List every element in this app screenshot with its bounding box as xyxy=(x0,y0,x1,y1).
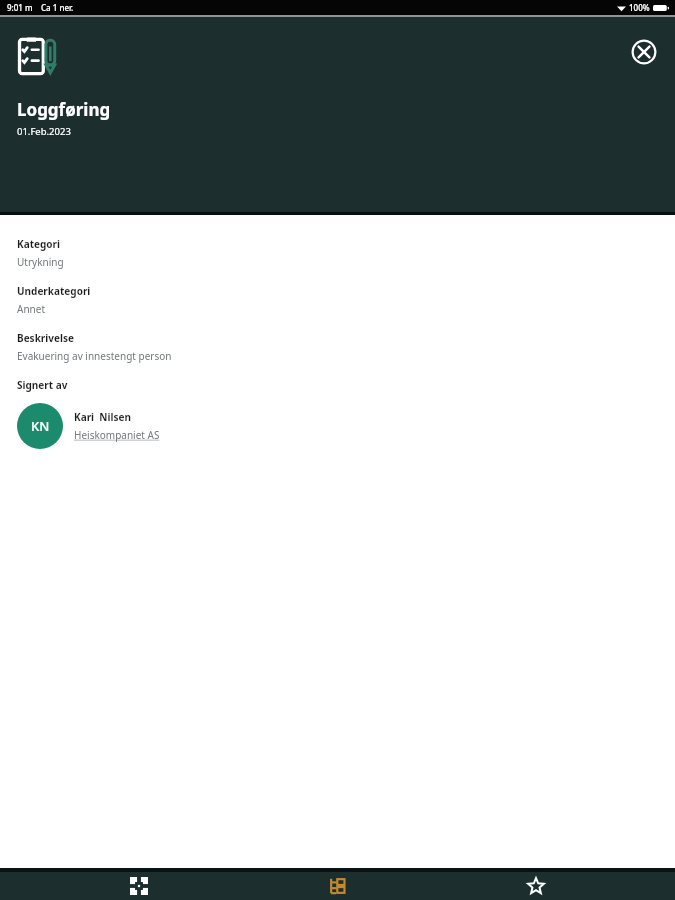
button[interactable]: Logg xyxy=(278,872,398,900)
button[interactable]: Skann xyxy=(79,872,199,900)
staticText: Utrykning xyxy=(17,255,64,269)
staticText: Kari Nilsen xyxy=(74,410,131,424)
staticText: 100% xyxy=(629,2,650,13)
button[interactable]: Lukk xyxy=(631,39,657,65)
staticText: Beskrivelse xyxy=(17,331,74,345)
button[interactable]: KN xyxy=(17,403,160,449)
staticText: Annet xyxy=(17,302,45,316)
staticText: Evakuering av innestengt person xyxy=(17,349,172,363)
staticText: 01.Feb.2023 xyxy=(17,125,71,138)
staticText: 9:01 m xyxy=(7,2,33,13)
staticText: KN xyxy=(31,417,50,435)
staticText: Underkategori xyxy=(17,284,91,298)
staticText: Heiskompaniet AS xyxy=(74,428,160,442)
button[interactable]: Favoritter xyxy=(476,872,596,900)
staticText: Ca 1 ner. xyxy=(41,2,74,13)
staticText: Loggføring xyxy=(17,98,111,121)
staticText: Signert av xyxy=(17,378,68,392)
staticText: Kategori xyxy=(17,237,60,251)
